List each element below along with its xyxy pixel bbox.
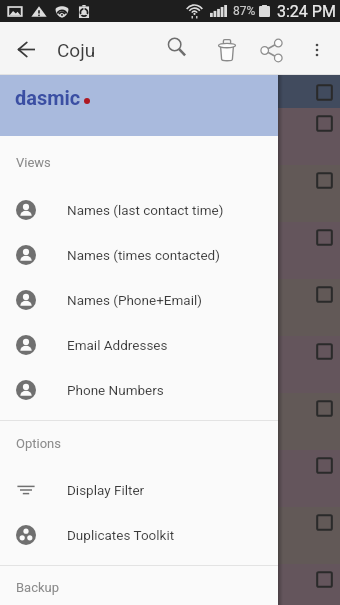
staticText: Display Filter: [67, 482, 145, 498]
staticText: dasmic: [15, 86, 81, 109]
button[interactable]: Names (last contact time): [0, 187, 278, 232]
button[interactable]: More options: [296, 29, 338, 71]
button[interactable]: Email Addresses: [0, 322, 278, 367]
staticText: Email Addresses: [67, 337, 168, 353]
staticText: Views: [16, 155, 51, 170]
button[interactable]: Delete: [206, 29, 248, 71]
staticText: Phone Numbers: [67, 382, 164, 398]
staticText: Names (last contact time): [67, 202, 224, 218]
staticText: 87%: [233, 4, 256, 18]
button[interactable]: Share: [250, 29, 292, 71]
button[interactable]: Phone Numbers: [0, 367, 278, 412]
staticText: Duplicates Toolkit: [67, 527, 175, 543]
staticText: Coju: [57, 39, 96, 61]
button[interactable]: Display Filter: [0, 467, 278, 512]
button[interactable]: Names (times contacted): [0, 232, 278, 277]
staticText: Names (Phone+Email): [67, 292, 202, 308]
staticText: Backup: [16, 580, 60, 595]
button[interactable]: Back: [6, 29, 46, 69]
staticText: Options: [16, 436, 61, 451]
button[interactable]: Duplicates Toolkit: [0, 512, 278, 557]
staticText: 3:24 PM: [277, 2, 336, 21]
button[interactable]: Names (Phone+Email): [0, 277, 278, 322]
button[interactable]: Search: [156, 26, 198, 68]
staticText: Names (times contacted): [67, 247, 220, 263]
